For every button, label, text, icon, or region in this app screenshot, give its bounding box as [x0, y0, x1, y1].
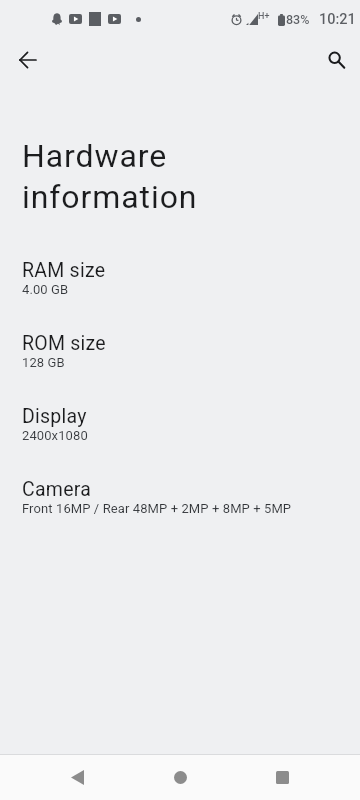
button[interactable]: Home [156, 755, 204, 800]
staticText: 10:21 [319, 11, 356, 28]
staticText: 83% [286, 12, 310, 27]
staticText: Camera [22, 478, 92, 501]
button[interactable]: RAM size [0, 251, 360, 307]
button[interactable]: Back [53, 755, 101, 800]
button[interactable]: Camera [0, 470, 360, 526]
staticText: RAM size [22, 259, 106, 282]
button[interactable]: Recents [258, 755, 306, 800]
staticText: Display [22, 405, 87, 428]
staticText: 4.00 GB [22, 282, 69, 297]
button[interactable]: Back [12, 44, 44, 76]
staticText: Hardware information [22, 137, 198, 216]
staticText: 2400x1080 [22, 428, 88, 443]
staticText: 128 GB [22, 355, 65, 370]
button[interactable]: ROM size [0, 324, 360, 380]
staticText: ROM size [22, 332, 106, 355]
staticText: H+ [258, 11, 270, 22]
button[interactable]: Display [0, 397, 360, 453]
staticText: Front 16MP / Rear 48MP + 2MP + 8MP + 5MP [22, 501, 292, 516]
button[interactable]: Search [320, 44, 352, 76]
